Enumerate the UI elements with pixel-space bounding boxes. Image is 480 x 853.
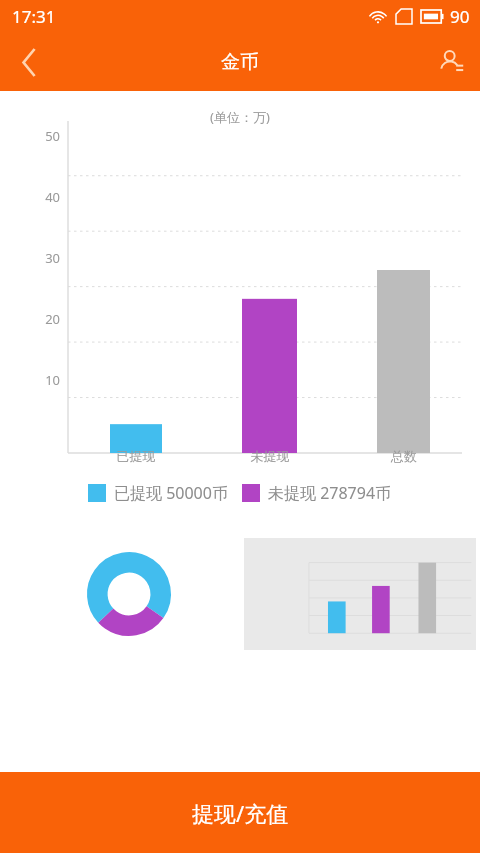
staticText: 总数 [364,448,444,464]
staticText: 未提现 278794币 [268,482,392,504]
staticText: 50 [32,127,60,145]
staticText: 30 [32,249,60,267]
staticText: 提现/充值 [192,798,289,828]
staticText: 未提现 [230,448,310,464]
staticText: (单位：万) [210,108,270,126]
staticText: 17:31 [12,5,56,28]
staticText: 20 [32,310,60,328]
staticText: 金币 [221,50,259,74]
staticText: 已提现 [96,448,176,464]
button[interactable]: Profile [422,33,480,91]
button[interactable]: Summary bar chart [244,538,476,650]
staticText: 已提现 50000币 [114,482,228,504]
button[interactable]: Back [0,33,58,91]
button[interactable]: Distribution pie chart [4,538,244,650]
button[interactable]: 提现/充值 [0,772,480,853]
staticText: 40 [32,188,60,206]
staticText: 90 [450,5,470,28]
staticText: 10 [32,371,60,389]
